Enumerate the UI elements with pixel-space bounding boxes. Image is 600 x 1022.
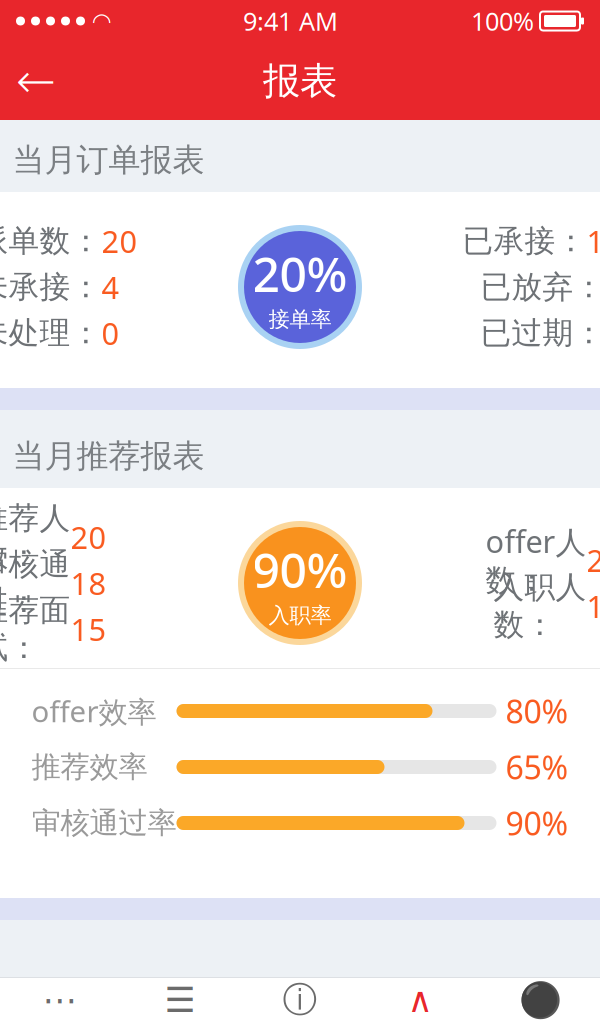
staticText: ⚫ <box>518 980 561 1020</box>
staticText: ⓘ <box>282 979 317 1021</box>
staticText: 90% <box>252 537 347 601</box>
staticText: 15 <box>70 609 106 649</box>
staticText: 入职人数： <box>493 568 586 644</box>
staticText: 16 <box>586 221 600 261</box>
button[interactable]: Clients <box>240 978 360 1022</box>
button[interactable]: More <box>0 978 120 1022</box>
staticText: 推荐效率 <box>31 749 147 785</box>
staticText: offer人数： <box>485 521 586 599</box>
staticText: 已放弃： <box>480 268 600 306</box>
staticText: 20 <box>70 517 106 557</box>
staticText: ∧ <box>407 980 432 1020</box>
staticText: 当月订单报表 <box>12 140 204 180</box>
staticText: 接单率 <box>268 306 331 332</box>
staticText: 20 <box>101 221 137 261</box>
staticText: 派单数： <box>0 222 101 260</box>
button[interactable]: Reports <box>360 978 480 1022</box>
staticText: ⋯ <box>42 980 77 1020</box>
staticText: 90% <box>505 802 568 844</box>
staticText: 18 <box>70 563 106 603</box>
staticText: 审核通过率 <box>31 805 176 841</box>
staticText: 已过期： <box>480 314 600 352</box>
staticText: 80% <box>505 690 568 732</box>
button[interactable]: 📊 <box>0 430 600 482</box>
staticText: 20 <box>586 540 600 580</box>
staticText: 未处理： <box>0 314 101 352</box>
staticText: 65% <box>505 746 568 788</box>
staticText: ← <box>16 54 56 108</box>
button[interactable]: Profile <box>480 978 600 1022</box>
staticText: 0 <box>101 313 119 353</box>
staticText: 推荐面试： <box>0 591 70 667</box>
staticText: 当月推荐报表 <box>12 436 204 476</box>
staticText: 未承接： <box>0 268 101 306</box>
staticText: 审核通过： <box>0 545 70 621</box>
button[interactable]: 📈 <box>0 134 600 186</box>
button[interactable]: Orders <box>120 978 240 1022</box>
staticText: 9:41 AM <box>243 4 338 38</box>
staticText: ☰ <box>164 980 195 1020</box>
staticText: 20% <box>252 241 347 305</box>
staticText: 报表 <box>263 58 337 104</box>
staticText: 100% <box>471 4 534 38</box>
staticText: 4 <box>101 267 119 307</box>
staticText: 18 <box>586 586 600 626</box>
staticText: 已承接： <box>462 222 586 260</box>
staticText: 推荐人数： <box>0 499 70 575</box>
staticText: ◠ <box>93 8 110 34</box>
button[interactable]: Back <box>6 51 66 111</box>
staticText: offer效率 <box>31 691 156 730</box>
staticText: 入职率 <box>268 602 331 628</box>
